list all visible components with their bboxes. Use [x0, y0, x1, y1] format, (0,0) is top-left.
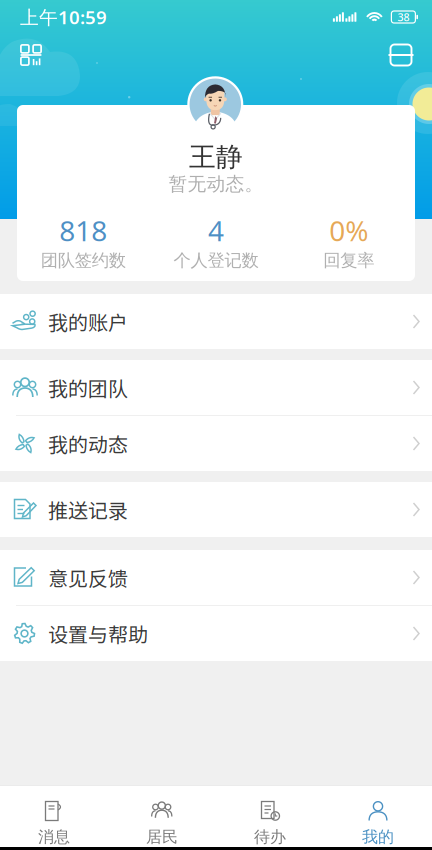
button[interactable]: 设置与帮助 — [0, 606, 432, 661]
staticText: 设置与帮助 — [48, 619, 148, 648]
button[interactable]: 意见反馈 — [0, 550, 432, 605]
button[interactable]: 我的动态 — [0, 416, 432, 471]
staticText: 0% — [329, 212, 368, 249]
button[interactable]: 消息 — [0, 786, 108, 847]
staticText: 我的 — [362, 827, 394, 847]
staticText: 我的团队 — [48, 373, 128, 402]
staticText: 我的动态 — [48, 429, 128, 458]
button[interactable]: 我的团队 — [0, 360, 432, 415]
staticText: 居民 — [146, 827, 178, 847]
staticText: 推送记录 — [48, 495, 128, 524]
button[interactable]: 二维码 — [14, 38, 48, 72]
button[interactable]: 我的账户 — [0, 294, 432, 349]
staticText: 意见反馈 — [48, 563, 128, 592]
staticText: 818 — [59, 212, 107, 249]
staticText: 暂无动态。 — [168, 172, 263, 195]
button[interactable]: 我的 — [324, 786, 432, 847]
button[interactable]: 居民 — [108, 786, 216, 847]
staticText: 我的账户 — [48, 307, 128, 336]
staticText: 王静 — [189, 141, 243, 173]
button[interactable]: 推送记录 — [0, 482, 432, 537]
staticText: 回复率 — [323, 250, 374, 271]
button[interactable]: 待办 — [216, 786, 324, 847]
staticText: 4 — [208, 212, 224, 249]
staticText: 消息 — [38, 827, 70, 847]
staticText: 38 — [397, 10, 409, 24]
staticText: 个人登记数 — [173, 250, 258, 271]
button[interactable]: 扫一扫 — [384, 38, 418, 72]
staticText: 待办 — [254, 827, 286, 847]
staticText: 上午10:59 — [20, 5, 107, 29]
staticText: 团队签约数 — [41, 250, 126, 271]
